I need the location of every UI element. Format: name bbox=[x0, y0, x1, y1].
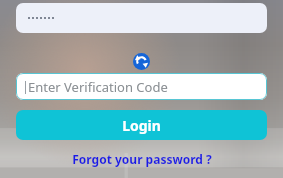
button[interactable]: Forgot your password ? bbox=[66, 149, 218, 169]
button[interactable]: Refresh verification code bbox=[133, 53, 150, 70]
staticText: Login bbox=[122, 116, 161, 135]
staticText: Enter Verification Code bbox=[28, 78, 168, 96]
button[interactable]: Enter Verification Code bbox=[16, 73, 267, 100]
staticText: Forgot your password ? bbox=[72, 151, 212, 167]
button[interactable]: Login bbox=[16, 110, 267, 140]
button[interactable] bbox=[16, 3, 267, 33]
